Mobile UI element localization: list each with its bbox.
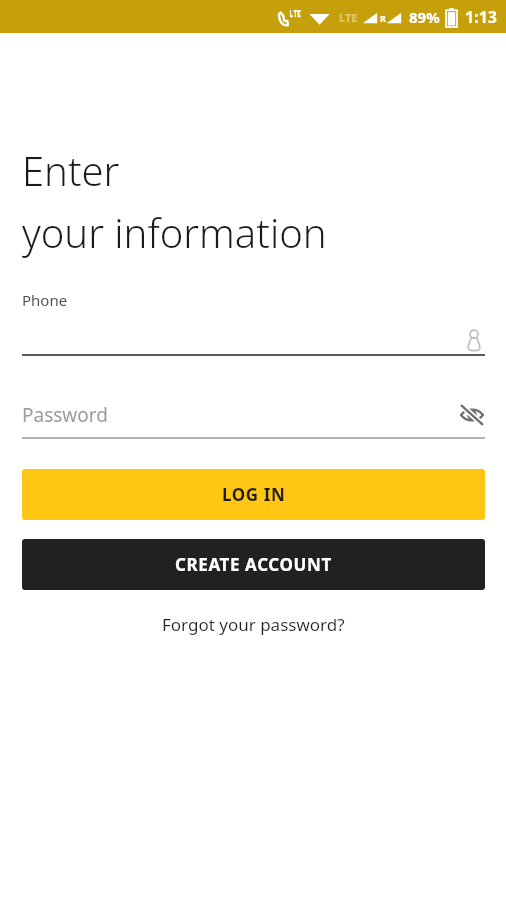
staticText: your information [22,205,327,259]
staticText: Password [22,402,108,428]
staticText: CREATE ACCOUNT [175,553,332,576]
button[interactable]: Password [22,400,485,439]
staticText: 1:13 [465,6,497,28]
staticText: Enter [22,143,120,197]
staticText: LOG IN [222,483,286,506]
staticText: LTE [339,10,358,25]
staticText: Phone [22,290,68,310]
button[interactable]: Forgot your password? [22,613,485,636]
button[interactable]: LOG IN [22,469,485,520]
staticText: R [380,12,386,24]
button[interactable]: Show password [459,402,485,428]
button[interactable]: Phone [22,290,485,356]
staticText: Forgot your password? [162,613,345,636]
button[interactable]: CREATE ACCOUNT [22,539,485,590]
other: Contacts [463,329,485,351]
staticText: 89% [409,7,440,27]
